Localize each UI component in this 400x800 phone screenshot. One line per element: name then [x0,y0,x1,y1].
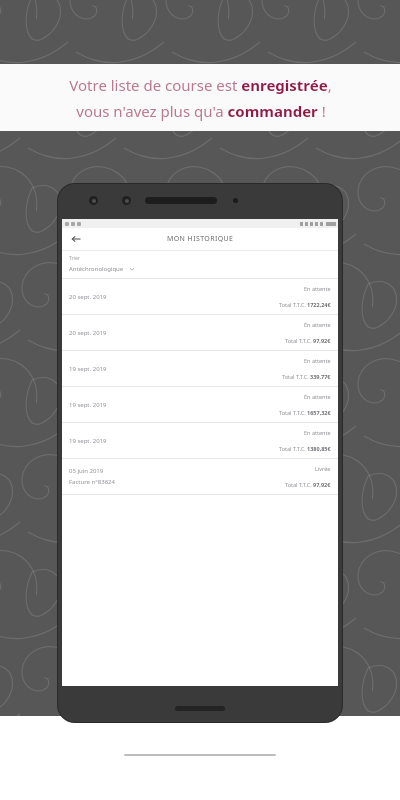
staticText: En attente [304,285,331,292]
button[interactable]: Back [68,231,84,247]
staticText: Trier [69,255,80,262]
button[interactable]: Trier [62,251,338,278]
button[interactable]: 20 sept. 2019 [62,279,338,314]
staticText: Antéchronologique [69,265,124,273]
staticText: Total T.T.C. 1722,24€ [279,301,331,308]
staticText: Total T.T.C. 97,92€ [285,337,331,344]
staticText: Livrée [315,465,331,472]
staticText: Votre liste de course est enregistrée, [69,75,332,95]
staticText: En attente [304,393,331,400]
staticText: 05 juin 2019 [69,467,104,475]
button[interactable]: 05 juin 2019 [62,459,338,494]
staticText: En attente [304,357,331,364]
staticText: MON HISTORIQUE [167,234,234,244]
staticText: Total T.T.C. 1657,32€ [279,409,331,416]
button[interactable]: 20 sept. 2019 [62,315,338,350]
staticText: 19 sept. 2019 [69,401,107,409]
staticText: Facture n°83624 [69,478,115,486]
staticText: En attente [304,429,331,436]
button[interactable]: 19 sept. 2019 [62,387,338,422]
button[interactable]: 19 sept. 2019 [62,351,338,386]
staticText: Total T.T.C. 339,77€ [282,373,331,380]
staticText: vous n'avez plus qu'a commander ! [76,101,326,121]
button[interactable]: 19 sept. 2019 [62,423,338,458]
staticText: 19 sept. 2019 [69,365,107,373]
staticText: 20 sept. 2019 [69,293,107,301]
staticText: Total T.T.C. 97,92€ [285,481,331,488]
staticText: 20 sept. 2019 [69,329,107,337]
staticText: En attente [304,321,331,328]
staticText: 19 sept. 2019 [69,437,107,445]
staticText: Total T.T.C. 1380,85€ [279,445,331,452]
